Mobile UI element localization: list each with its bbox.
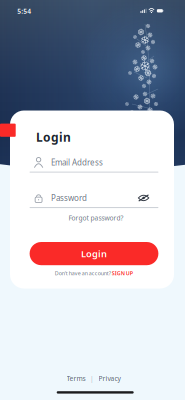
staticText: Login	[81, 247, 107, 260]
staticText: SIGN UP	[112, 270, 133, 277]
staticText: Login	[36, 129, 71, 145]
button[interactable]: Show password	[138, 194, 149, 201]
button[interactable]: Forgot password?	[63, 212, 123, 223]
staticText: |	[90, 374, 94, 383]
button[interactable]: Terms	[66, 374, 85, 383]
staticText: Don't have an account?	[55, 270, 112, 277]
button[interactable]: Privacy	[98, 374, 120, 383]
button[interactable]: Login	[30, 242, 158, 265]
staticText: Password	[51, 193, 87, 203]
staticText: Terms	[66, 374, 85, 383]
staticText: 5:54	[17, 7, 31, 16]
staticText: Forgot password?	[68, 214, 123, 222]
button[interactable]: SIGN UP	[112, 270, 133, 277]
staticText: Email Address	[51, 157, 103, 168]
staticText: Privacy	[98, 374, 120, 383]
